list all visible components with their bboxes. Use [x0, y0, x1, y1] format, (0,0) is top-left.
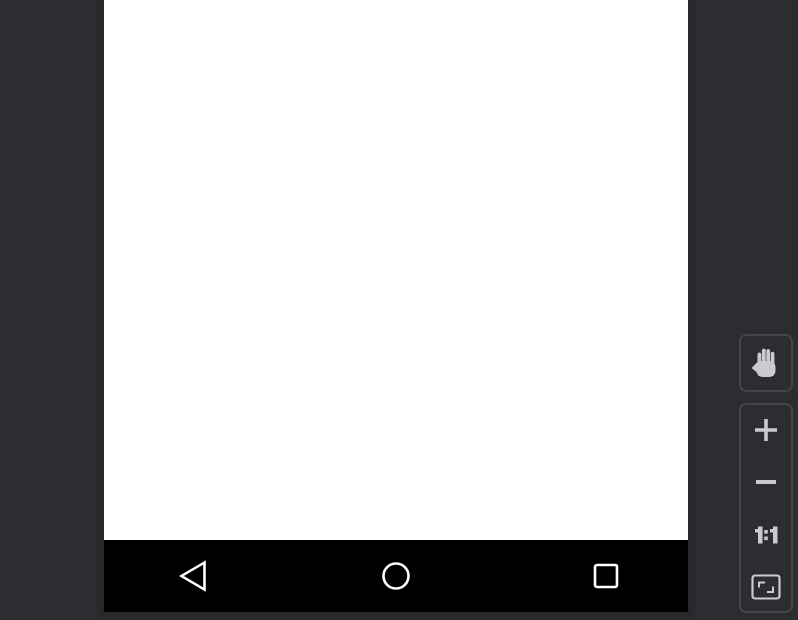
button[interactable] — [169, 552, 217, 600]
button[interactable] — [739, 507, 793, 559]
button[interactable] — [372, 552, 420, 600]
button[interactable] — [582, 552, 630, 600]
button[interactable] — [739, 403, 793, 455]
button[interactable] — [739, 455, 793, 507]
button[interactable] — [739, 559, 793, 613]
button[interactable] — [739, 334, 793, 392]
